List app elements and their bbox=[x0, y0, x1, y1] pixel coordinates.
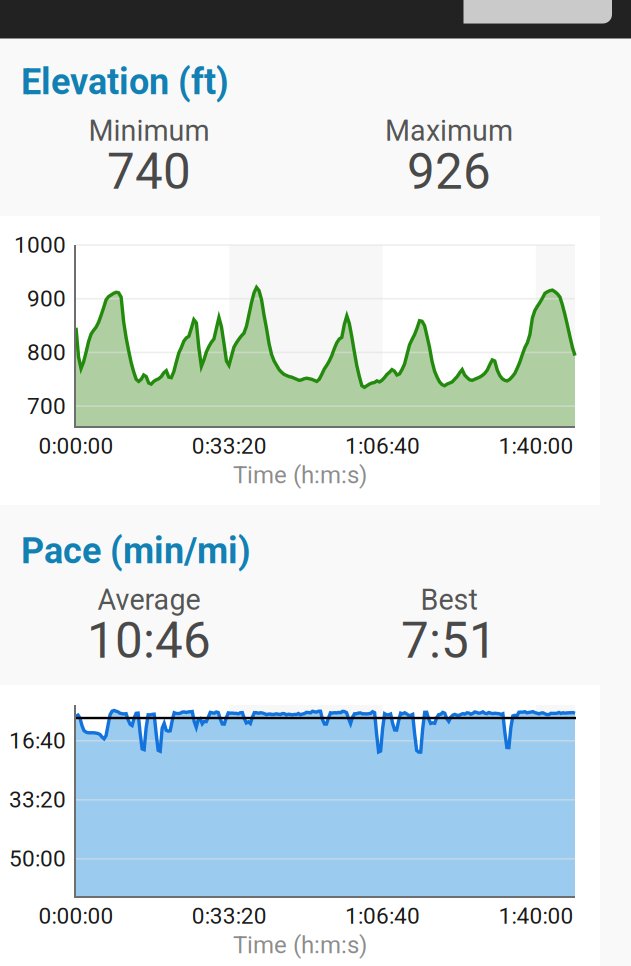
staticText: 926 bbox=[407, 143, 491, 201]
staticText: 1:40:00 bbox=[498, 433, 573, 459]
staticText: 1:40:00 bbox=[498, 903, 573, 929]
staticText: Maximum bbox=[385, 114, 513, 148]
staticText: 1:06:40 bbox=[345, 433, 420, 459]
button[interactable]: Charts bbox=[463, 0, 612, 23]
staticText: 0:00:00 bbox=[38, 903, 113, 929]
staticText: Pace (min/mi) bbox=[21, 530, 251, 572]
button[interactable]: Share bbox=[315, 0, 463, 23]
staticText: 10:46 bbox=[87, 612, 211, 670]
staticText: Time (h:m:s) bbox=[233, 461, 367, 489]
staticText: 1:06:40 bbox=[345, 903, 420, 929]
staticText: 900 bbox=[27, 285, 66, 312]
staticText: 0:00:00 bbox=[38, 433, 113, 459]
staticText: 1000 bbox=[14, 232, 66, 258]
staticText: 0:33:20 bbox=[192, 903, 267, 929]
staticText: Elevation (ft) bbox=[21, 61, 229, 103]
staticText: 7:51 bbox=[401, 612, 497, 670]
staticText: Minimum bbox=[88, 114, 209, 148]
staticText: 740 bbox=[107, 143, 191, 201]
staticText: Average bbox=[97, 583, 200, 617]
staticText: 16:40 bbox=[9, 727, 66, 754]
staticText: 700 bbox=[27, 393, 66, 419]
staticText: Time (h:m:s) bbox=[233, 931, 367, 959]
staticText: 50:00 bbox=[9, 845, 66, 872]
staticText: 0:33:20 bbox=[192, 433, 267, 459]
staticText: 33:20 bbox=[9, 786, 66, 813]
staticText: 800 bbox=[27, 339, 66, 366]
staticText: Best bbox=[420, 583, 477, 617]
